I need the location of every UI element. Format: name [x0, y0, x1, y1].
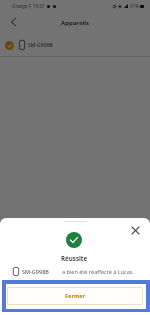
button[interactable]: Fermer	[7, 287, 143, 305]
button[interactable]: Back	[5, 15, 21, 31]
button[interactable]: Close	[128, 223, 142, 237]
staticText: Orange F 15:37	[12, 3, 45, 9]
staticText: Réussite	[61, 254, 88, 262]
staticText: 91%	[130, 3, 139, 9]
staticText: a bien été réaffecté à Lucas.	[62, 268, 134, 275]
staticText: Fermer	[65, 292, 86, 300]
staticText: SM-G998B	[28, 42, 53, 49]
button[interactable]: SM-G998B	[0, 34, 150, 56]
staticText: SM-G998B	[22, 268, 49, 275]
staticText: Appareils	[61, 19, 90, 27]
